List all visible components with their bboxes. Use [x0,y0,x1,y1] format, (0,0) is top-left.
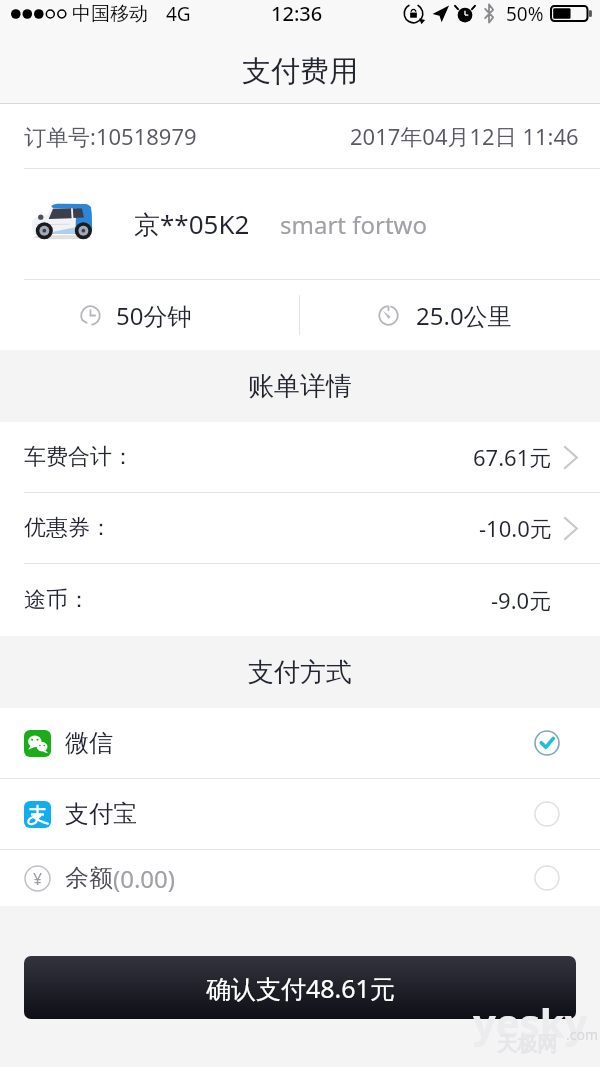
staticText: 2017年04月12日 11:46 [350,121,579,151]
button[interactable]: 确认支付48.61元 [24,956,576,1019]
button[interactable]: 车费合计： [0,422,600,492]
staticText: 25.0公里 [416,299,512,332]
staticText: 余额 [65,863,113,893]
staticText: 订单号:10518979 [24,121,197,151]
button[interactable]: 支付宝 [0,779,600,849]
staticText: -9.0元 [491,585,552,615]
staticText: 支付方式 [248,656,352,689]
staticText: ¥ [33,868,43,890]
staticText: -10.0元 [479,513,552,543]
staticText: 50% [506,1,544,27]
staticText: 确认支付48.61元 [206,971,395,1005]
staticText: 50分钟 [116,299,192,332]
staticText: 中国移动 [72,2,148,26]
staticText: 天极网 [497,1032,557,1057]
staticText: 4G [166,1,191,27]
staticText: 支付宝 [65,799,137,829]
staticText: smart fortwo [280,208,427,241]
staticText: 微信 [65,728,113,758]
button[interactable]: ¥ [0,850,600,906]
staticText: .com [566,1025,599,1044]
staticText: 车费合计： [24,443,134,471]
staticText: yesky [473,995,588,1049]
staticText: 优惠券： [24,514,112,542]
staticText: 67.61元 [473,442,552,472]
staticText: 京**05K2 [134,206,250,242]
staticText: 12:36 [271,0,323,27]
button[interactable]: 微信 [0,708,600,778]
staticText: 账单详情 [248,370,352,403]
button[interactable]: 途币： [0,564,600,636]
button[interactable]: 优惠券： [0,493,600,563]
staticText: 支付费用 [242,53,358,90]
staticText: 途币： [24,586,90,614]
staticText: (0.00) [113,862,176,895]
